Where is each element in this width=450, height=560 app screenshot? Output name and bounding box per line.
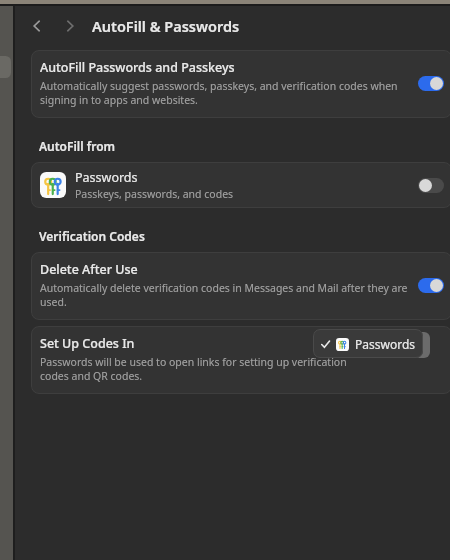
- staticText: Passkeys, passwords, and codes: [75, 187, 234, 201]
- button[interactable]: Choose app: [402, 332, 430, 358]
- staticText: AutoFill from: [39, 138, 116, 154]
- button[interactable]: Delete After Use: [31, 252, 450, 320]
- staticText: Delete After Use: [40, 261, 138, 278]
- staticText: Passwords: [355, 336, 416, 352]
- staticText: AutoFill Passwords and Passkeys: [40, 59, 235, 76]
- staticText: Automatically suggest passwords, passkey…: [40, 79, 412, 107]
- button[interactable]: Passwords: [31, 162, 450, 208]
- staticText: Passwords: [75, 169, 138, 186]
- button[interactable]: Toggle off: [418, 178, 444, 193]
- staticText: AutoFill & Passwords: [92, 16, 240, 36]
- button[interactable]: Forward: [58, 14, 82, 38]
- staticText: Passwords will be used to open links for…: [40, 355, 354, 383]
- button[interactable]: AutoFill Passwords and Passkeys: [31, 50, 450, 118]
- staticText: Automatically delete verification codes …: [40, 281, 412, 309]
- button[interactable]: Toggle on: [418, 76, 444, 91]
- staticText: Set Up Codes In: [40, 335, 135, 352]
- staticText: Verification Codes: [39, 228, 145, 244]
- button[interactable]: Back: [25, 14, 49, 38]
- button[interactable]: Passwords: [313, 329, 423, 358]
- button[interactable]: Toggle on: [418, 278, 444, 293]
